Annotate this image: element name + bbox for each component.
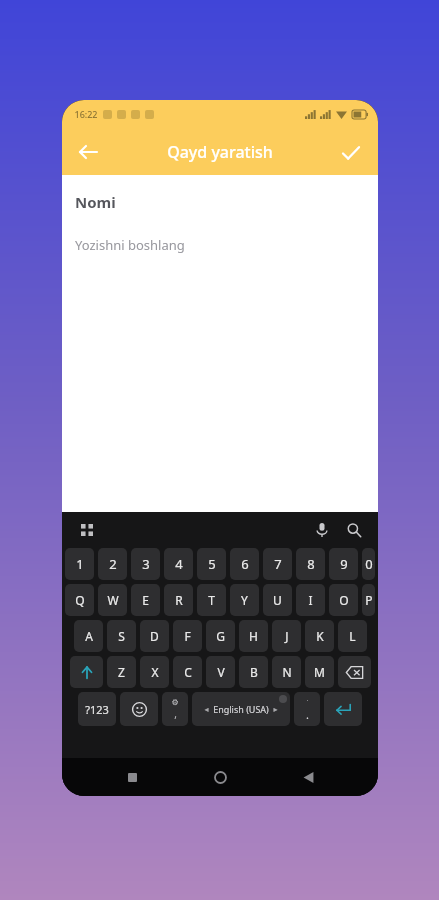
staticText: 0	[365, 555, 373, 573]
button[interactable]: Search	[340, 516, 368, 544]
button[interactable]: 4	[164, 548, 193, 580]
staticText: Y	[241, 592, 248, 608]
staticText: English (USA)	[213, 703, 269, 715]
button[interactable]: I	[296, 584, 325, 616]
staticText: D	[150, 628, 159, 644]
button[interactable]: P	[362, 584, 375, 616]
button[interactable]: M	[305, 656, 334, 688]
staticText: G	[216, 628, 225, 644]
staticText: E	[142, 592, 149, 608]
staticText: Q	[75, 592, 85, 608]
button[interactable]: W	[98, 584, 127, 616]
button[interactable]	[70, 656, 103, 688]
button[interactable]: 8	[296, 548, 325, 580]
button[interactable]: 1	[65, 548, 94, 580]
button[interactable]: 6	[230, 548, 259, 580]
button[interactable]: ⚙	[162, 692, 188, 726]
button[interactable]: Y	[230, 584, 259, 616]
button[interactable]	[324, 692, 362, 726]
button[interactable]: T	[197, 584, 226, 616]
button[interactable]: F	[173, 620, 202, 652]
staticText: U	[273, 592, 282, 608]
button[interactable]: D	[140, 620, 169, 652]
staticText: X	[151, 664, 159, 680]
staticText: ▸	[273, 705, 278, 714]
staticText: M	[314, 664, 325, 680]
button[interactable]: 0	[362, 548, 375, 580]
staticText: 6	[241, 555, 249, 573]
staticText: O	[339, 592, 349, 608]
button[interactable]: Keyboard options	[74, 517, 100, 543]
button[interactable]: U	[263, 584, 292, 616]
staticText: 8	[307, 555, 315, 573]
staticText: T	[208, 592, 215, 608]
button[interactable]: J	[272, 620, 301, 652]
staticText: C	[184, 664, 192, 680]
staticText: 2	[109, 555, 117, 573]
staticText: ?123	[85, 702, 109, 717]
staticText: F	[184, 628, 191, 644]
staticText: Qayd yaratish	[167, 141, 273, 163]
staticText: ॱ	[306, 697, 309, 707]
button[interactable]: V	[206, 656, 235, 688]
button[interactable]: E	[131, 584, 160, 616]
button[interactable]: Save	[330, 132, 370, 172]
staticText: K	[316, 628, 324, 644]
button[interactable]: K	[305, 620, 334, 652]
staticText: N	[282, 664, 292, 680]
staticText: Yozishni boshlang	[75, 236, 185, 254]
button[interactable]: Recents	[114, 759, 150, 795]
button[interactable]: Home	[202, 759, 238, 795]
button[interactable]: N	[272, 656, 301, 688]
staticText: I	[308, 592, 313, 608]
button[interactable]: X	[140, 656, 169, 688]
button[interactable]: L	[338, 620, 367, 652]
button[interactable]: C	[173, 656, 202, 688]
staticText: .	[306, 707, 309, 722]
staticText: Nomi	[75, 192, 116, 212]
staticText: L	[349, 628, 356, 644]
staticText: 7	[274, 555, 282, 573]
staticText: B	[250, 664, 258, 680]
staticText: 1	[76, 555, 84, 573]
button[interactable]: O	[329, 584, 358, 616]
staticText: H	[249, 628, 258, 644]
staticText: 16:22	[74, 108, 98, 120]
staticText: W	[107, 592, 119, 608]
staticText: R	[175, 592, 183, 608]
button[interactable]	[120, 692, 158, 726]
button[interactable]: 2	[98, 548, 127, 580]
button[interactable]: ?123	[78, 692, 116, 726]
button[interactable]: 7	[263, 548, 292, 580]
button[interactable]: ॱ	[294, 692, 320, 726]
button[interactable]: ◂	[192, 692, 290, 726]
staticText: 5	[208, 555, 216, 573]
staticText: S	[118, 628, 125, 644]
staticText: 9	[340, 555, 348, 573]
staticText: V	[217, 664, 225, 680]
staticText: ◂	[204, 705, 209, 714]
staticText: P	[365, 592, 373, 608]
button[interactable]: G	[206, 620, 235, 652]
button[interactable]: S	[107, 620, 136, 652]
staticText: 3	[142, 555, 150, 573]
button[interactable]: R	[164, 584, 193, 616]
button[interactable]: 5	[197, 548, 226, 580]
button[interactable]	[338, 656, 371, 688]
button[interactable]: B	[239, 656, 268, 688]
button[interactable]: Back	[290, 759, 326, 795]
button[interactable]: 3	[131, 548, 160, 580]
button[interactable]: Back	[68, 132, 108, 172]
button[interactable]: Z	[107, 656, 136, 688]
button[interactable]: Voice input	[308, 516, 336, 544]
staticText: A	[85, 628, 93, 644]
staticText: ⚙	[171, 698, 179, 707]
staticText: ,	[174, 707, 177, 721]
staticText: Z	[118, 664, 125, 680]
button[interactable]: Q	[65, 584, 94, 616]
staticText: J	[285, 628, 289, 644]
button[interactable]: A	[74, 620, 103, 652]
button[interactable]: 9	[329, 548, 358, 580]
button[interactable]: H	[239, 620, 268, 652]
staticText: 4	[175, 555, 183, 573]
